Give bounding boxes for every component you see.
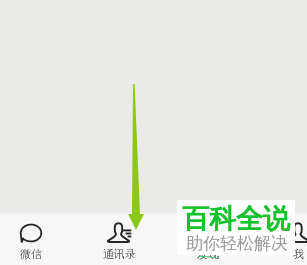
button[interactable]: 微信 Chats tab xyxy=(0,215,75,265)
button[interactable]: 我 Me tab xyxy=(254,215,307,265)
staticText: 我 xyxy=(293,247,304,261)
button[interactable]: 发现 Discover tab xyxy=(164,215,252,265)
staticText: 百科全说 xyxy=(198,255,221,258)
staticText: 通讯录 xyxy=(103,247,136,261)
staticText: 助你轻松解决 xyxy=(186,233,288,254)
button[interactable]: 百科全说 watermark xyxy=(177,200,295,255)
staticText: 微信 xyxy=(20,247,42,261)
button[interactable]: 通讯录 Contacts tab xyxy=(75,215,163,265)
staticText: 发现 xyxy=(197,247,219,261)
staticText: 百科全说 xyxy=(182,202,290,236)
